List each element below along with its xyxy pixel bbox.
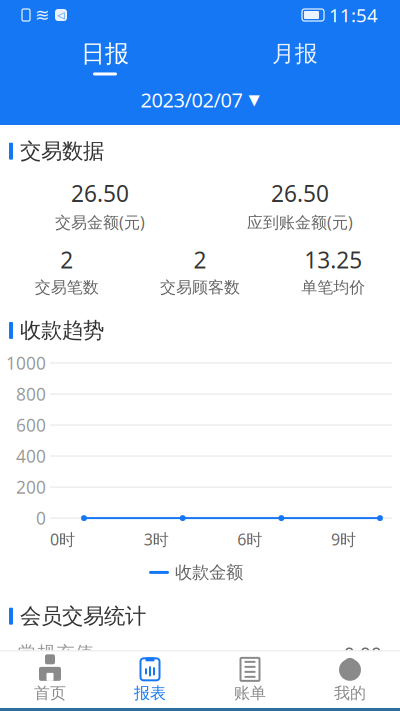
button[interactable]: 首页	[0, 651, 100, 708]
staticText: 2	[60, 245, 73, 275]
staticText: 1000	[6, 351, 46, 374]
staticText: 我的	[334, 683, 366, 703]
staticText: 0.00	[344, 697, 382, 711]
button[interactable]: 我的	[300, 651, 400, 708]
staticText: 2023/02/07	[140, 86, 242, 113]
staticText: 常规充值	[18, 642, 94, 665]
staticText: 收款金额	[175, 562, 243, 583]
staticText: 0	[36, 507, 46, 530]
staticText: 26.50	[71, 178, 129, 208]
staticText: 0.00	[344, 641, 382, 666]
staticText: 800	[16, 382, 46, 405]
staticText: 应到账金额(元)	[247, 211, 353, 232]
staticText: ≋	[35, 5, 50, 25]
button[interactable]: 月报	[200, 37, 390, 78]
staticText: 报表	[134, 683, 166, 703]
staticText: 日报	[81, 39, 129, 68]
button[interactable]: 2023/02/07	[130, 82, 269, 117]
staticText: 0.00	[344, 669, 382, 694]
staticText: 200	[16, 476, 46, 499]
staticText: 交易笔数	[35, 278, 99, 297]
staticText: 账单	[234, 683, 266, 703]
staticText: 会员消费	[18, 698, 94, 711]
staticText: ▼	[248, 91, 259, 108]
staticText: 收款趋势	[20, 317, 104, 343]
button[interactable]: 报表	[100, 651, 200, 708]
staticText: 交易金额(元)	[55, 211, 145, 232]
staticText: 26.50	[271, 178, 329, 208]
staticText: 13.25	[304, 245, 362, 275]
staticText: 0时	[50, 528, 75, 550]
staticText: 6时	[237, 528, 262, 550]
staticText: 11:54	[329, 3, 378, 27]
staticText: 400	[16, 444, 46, 467]
staticText: 3时	[144, 528, 169, 550]
staticText: 单笔均价	[301, 278, 365, 297]
staticText: 2	[193, 245, 206, 275]
staticText: 9时	[331, 528, 356, 550]
button[interactable]: 日报	[10, 36, 200, 78]
button[interactable]: 账单	[200, 651, 300, 708]
staticText: 月报	[272, 40, 318, 68]
staticText: ◁	[57, 10, 64, 20]
staticText: 会员交易统计	[20, 603, 146, 629]
staticText: 交易数据	[20, 138, 104, 164]
staticText: 交易顾客数	[160, 278, 240, 297]
staticText: 首页	[34, 683, 66, 703]
staticText: 充值满送	[18, 670, 94, 693]
staticText: 600	[16, 413, 46, 436]
